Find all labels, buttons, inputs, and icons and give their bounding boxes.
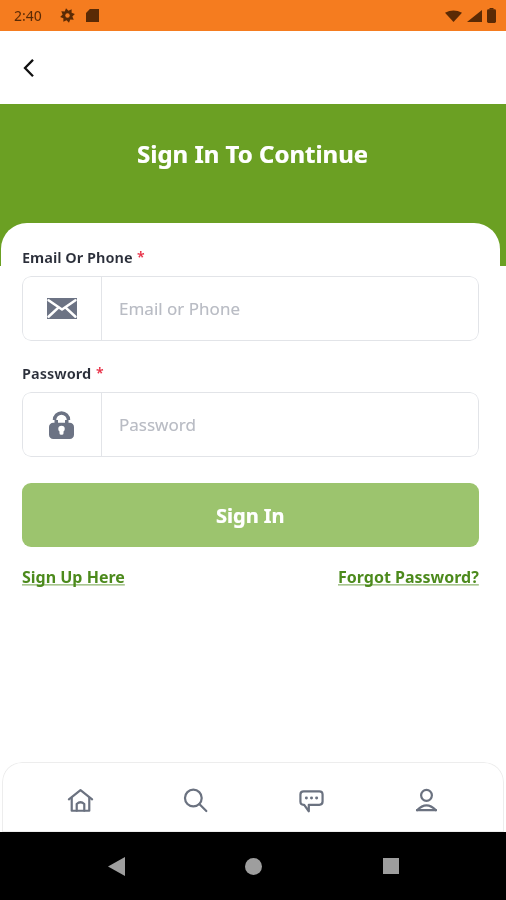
staticText: Password	[22, 363, 92, 383]
button[interactable]: Profile	[389, 772, 463, 828]
staticText: Sign In To Continue	[137, 137, 369, 170]
button[interactable]: Messages	[274, 772, 348, 828]
staticText: Password	[119, 413, 196, 436]
button[interactable]: Back	[8, 47, 50, 89]
staticText: *	[137, 247, 145, 266]
button[interactable]: Email or Phone	[22, 276, 479, 341]
button[interactable]: Recent apps	[369, 844, 413, 888]
button[interactable]: Back	[94, 844, 138, 888]
button[interactable]: Forgot Password?	[338, 566, 479, 588]
button[interactable]: Search	[158, 772, 232, 828]
button[interactable]: Sign Up Here	[22, 566, 125, 588]
staticText: 2:40	[14, 6, 42, 25]
button[interactable]: Home	[231, 844, 275, 888]
staticText: Sign Up Here	[22, 566, 125, 588]
staticText: Sign In	[216, 502, 285, 529]
staticText: Forgot Password?	[338, 566, 479, 588]
staticText: Email Or Phone	[22, 247, 133, 267]
button[interactable]: Password	[22, 392, 479, 457]
button[interactable]: Sign In	[22, 483, 479, 547]
staticText: *	[96, 363, 104, 382]
button[interactable]: Home	[43, 772, 117, 828]
staticText: Email or Phone	[119, 297, 240, 320]
